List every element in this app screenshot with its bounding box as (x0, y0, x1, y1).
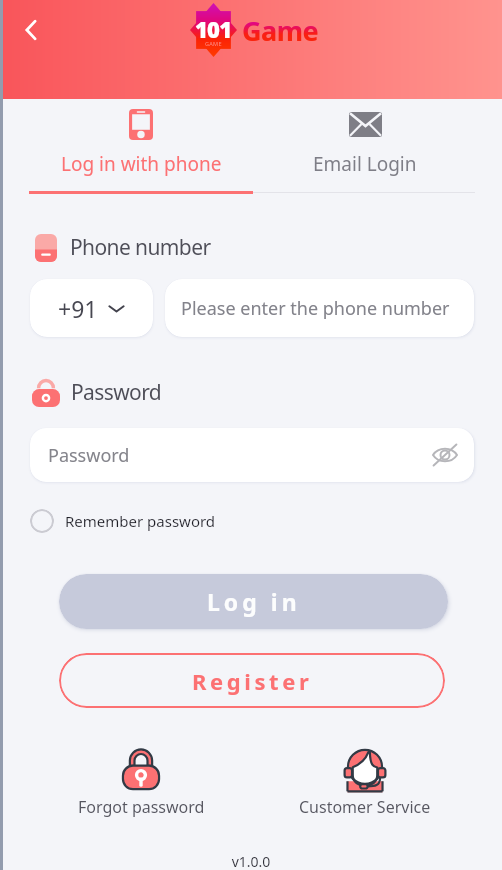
staticText: Email Login (313, 151, 417, 177)
staticText: Password (48, 443, 130, 468)
staticText: GAME (205, 40, 222, 47)
button[interactable]: +91 (30, 279, 153, 337)
button[interactable]: Please enter the phone number (165, 279, 474, 337)
staticText: Forgot password (78, 796, 205, 818)
staticText: Register (192, 666, 313, 696)
staticText: +91 (58, 293, 98, 324)
staticText: 101 (195, 14, 232, 44)
staticText: Phone number (70, 233, 211, 262)
staticText: Log in (207, 586, 301, 617)
staticText: Remember password (65, 511, 216, 531)
button[interactable]: Remember password (30, 509, 216, 533)
button[interactable]: Back (9, 8, 53, 52)
button[interactable]: Register (59, 653, 445, 708)
button[interactable]: Password (30, 428, 474, 482)
button[interactable]: Show password (430, 440, 460, 470)
button[interactable]: Log in (59, 574, 448, 629)
button[interactable]: Log in with phone (29, 97, 253, 191)
button[interactable]: Forgot password (29, 745, 253, 818)
button[interactable]: Email Login (253, 97, 477, 191)
staticText: Please enter the phone number (181, 296, 450, 321)
button[interactable]: Customer Service (253, 745, 477, 818)
staticText: Game (242, 12, 319, 49)
staticText: Password (71, 378, 162, 407)
staticText: Customer Service (299, 796, 431, 818)
staticText: Log in with phone (61, 151, 222, 177)
staticText: v1.0.0 (0, 852, 502, 870)
